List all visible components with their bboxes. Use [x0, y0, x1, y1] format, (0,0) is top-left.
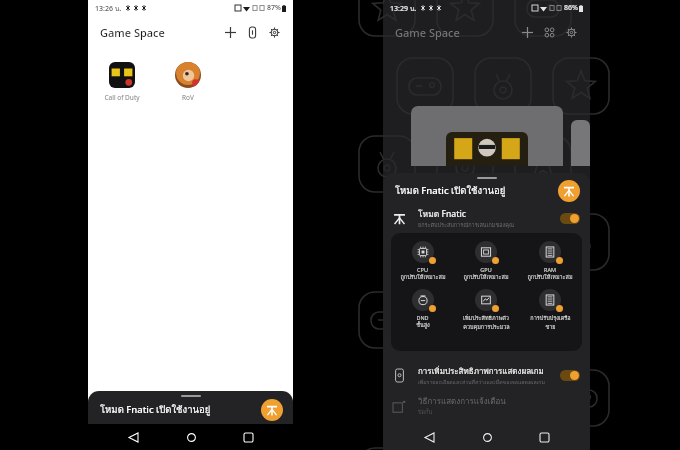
staticText: Game Space — [100, 25, 165, 40]
button[interactable]: Toggle — [560, 370, 580, 381]
button[interactable]: Settings — [560, 21, 582, 43]
button[interactable]: Settings — [263, 21, 285, 43]
button[interactable] — [411, 106, 563, 166]
button[interactable]: DND — [391, 289, 454, 330]
staticText: 13:29 น. — [390, 3, 417, 14]
staticText: GPU — [480, 266, 492, 273]
staticText: เพิ่มประสิทธิภาพดัว — [463, 314, 509, 323]
staticText: โหมด Fnatic — [418, 207, 466, 221]
staticText: การปรับปรุงเครือ — [530, 314, 571, 323]
button[interactable]: RoV — [166, 62, 210, 102]
staticText: Call of Duty — [104, 93, 140, 102]
staticText: RoV — [182, 93, 194, 102]
button[interactable]: Call of Duty — [100, 62, 144, 102]
button[interactable]: CPU — [391, 241, 454, 282]
button[interactable]: RAM — [518, 241, 582, 282]
staticText: ถูกปรับให้เหมาะสม — [527, 273, 573, 282]
staticText: เพิ่มรายละเอียดและส่วนที่สว่างและมืดของจ… — [418, 378, 545, 386]
staticText: การเพิ่มประสิทธิภาพการแสดงผลเกม — [418, 365, 544, 378]
staticText: ปิดกั้น — [418, 408, 433, 417]
button[interactable]: Add game — [219, 21, 241, 43]
staticText: ชั้นสูง — [416, 321, 430, 330]
staticText: วิธีการแสดงการแจ้งเตือน — [418, 395, 506, 408]
staticText: 13:26 น. — [95, 3, 122, 14]
button[interactable]: โหมด Fnatic เปิดใช้งานอยู่ — [88, 391, 293, 424]
staticText: โหมด Fnatic เปิดใช้งานอยู่ — [100, 402, 211, 417]
staticText: 87% — [267, 3, 281, 13]
button[interactable]: Toggle — [560, 213, 580, 224]
button[interactable]: การปรับปรุงเครือ — [518, 289, 582, 332]
staticText: CPU — [417, 266, 428, 273]
staticText: ถูกปรับให้เหมาะสม — [400, 273, 446, 282]
staticText: DND — [416, 314, 429, 321]
button[interactable]: Fnatic mode — [261, 399, 283, 421]
button[interactable]: Add game — [516, 21, 538, 43]
staticText: Game Space — [395, 25, 460, 40]
staticText: ข่าย — [545, 323, 556, 332]
button[interactable]: โหมด Fnatic — [393, 203, 580, 233]
staticText: 86% — [564, 3, 578, 13]
button[interactable]: GPU — [454, 241, 518, 282]
button[interactable]: Back — [121, 425, 145, 449]
button[interactable]: Home — [475, 425, 499, 449]
staticText: RAM — [544, 266, 556, 273]
button[interactable]: All games — [538, 21, 560, 43]
button[interactable]: Vibration — [241, 21, 263, 43]
button[interactable]: เพิ่มประสิทธิภาพดัว — [454, 289, 518, 332]
button[interactable]: Fnatic mode — [558, 180, 580, 202]
button[interactable]: วิธีการแสดงการแจ้งเตือน — [393, 392, 580, 420]
button[interactable]: โหมด Fnatic เปิดใช้งานอยู่ — [383, 173, 590, 203]
button[interactable]: การเพิ่มประสิทธิภาพการแสดงผลเกม — [393, 358, 580, 392]
staticText: โหมด Fnatic เปิดใช้งานอยู่ — [395, 183, 506, 198]
button[interactable]: Home — [179, 425, 203, 449]
staticText: ถูกปรับให้เหมาะสม — [463, 273, 509, 282]
button[interactable]: Recents — [532, 425, 556, 449]
button[interactable]: Recents — [236, 425, 260, 449]
button[interactable]: Back — [417, 425, 441, 449]
staticText: ควบคุมการประมวล — [463, 323, 510, 332]
staticText: ยกระดับประสบการณ์การเล่นเกมของคุณ — [418, 221, 514, 230]
